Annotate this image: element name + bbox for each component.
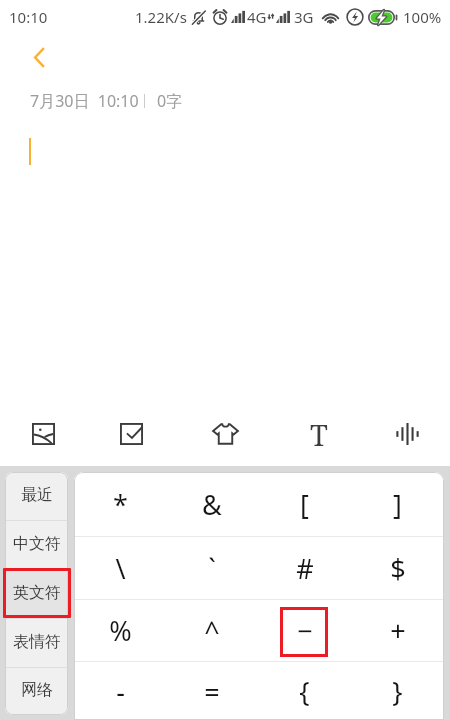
staticText: =: [204, 673, 220, 710]
staticText: 4G: [247, 7, 267, 27]
staticText: 3G: [294, 7, 314, 27]
staticText: $: [390, 550, 406, 587]
staticText: 表情符: [13, 632, 61, 652]
staticText: 最近: [21, 485, 53, 505]
staticText: %: [109, 612, 132, 649]
button[interactable]: \: [74, 537, 166, 600]
button[interactable]: Text format: [292, 407, 346, 461]
button[interactable]: −: [258, 599, 351, 662]
button[interactable]: ]: [351, 472, 444, 537]
staticText: −: [297, 612, 313, 649]
staticText: `: [208, 550, 216, 587]
button[interactable]: &: [166, 472, 258, 537]
button[interactable]: #: [258, 537, 351, 600]
button[interactable]: Insert image: [16, 407, 70, 461]
button[interactable]: +: [351, 599, 444, 662]
button[interactable]: =: [166, 662, 258, 720]
button[interactable]: 中文符: [5, 520, 68, 569]
staticText: [: [300, 486, 309, 523]
button[interactable]: Back: [17, 35, 61, 79]
button[interactable]: %: [74, 599, 166, 662]
button[interactable]: `: [166, 537, 258, 600]
staticText: 1.22K/s: [135, 7, 187, 27]
staticText: }: [392, 673, 403, 710]
staticText: T: [310, 415, 328, 454]
staticText: 0字: [157, 90, 183, 112]
staticText: 100%: [403, 7, 442, 27]
button[interactable]: 网络: [5, 667, 68, 714]
staticText: 网络: [21, 680, 53, 700]
staticText: {: [299, 673, 310, 710]
button[interactable]: Style: [198, 407, 252, 461]
staticText: \: [115, 550, 126, 587]
button[interactable]: -: [74, 662, 166, 720]
button[interactable]: [: [258, 472, 351, 537]
button[interactable]: Checklist: [104, 407, 158, 461]
staticText: 中文符: [13, 534, 61, 554]
button[interactable]: $: [351, 537, 444, 600]
staticText: -: [116, 673, 125, 710]
button[interactable]: 表情符: [5, 618, 68, 667]
staticText: 英文符: [13, 583, 61, 603]
staticText: 10:10: [9, 7, 48, 27]
button[interactable]: Voice: [380, 407, 434, 461]
staticText: *: [113, 486, 128, 523]
staticText: 7月30日 10:10: [30, 90, 139, 112]
staticText: &: [202, 486, 222, 523]
button[interactable]: 最近: [5, 472, 68, 520]
button[interactable]: *: [74, 472, 166, 537]
button[interactable]: {: [258, 662, 351, 720]
button[interactable]: 英文符: [5, 569, 68, 618]
staticText: +: [390, 612, 406, 649]
button[interactable]: ^: [166, 599, 258, 662]
staticText: ]: [393, 486, 402, 523]
button[interactable]: }: [351, 662, 444, 720]
staticText: ^: [204, 612, 220, 649]
staticText: #: [296, 550, 314, 587]
